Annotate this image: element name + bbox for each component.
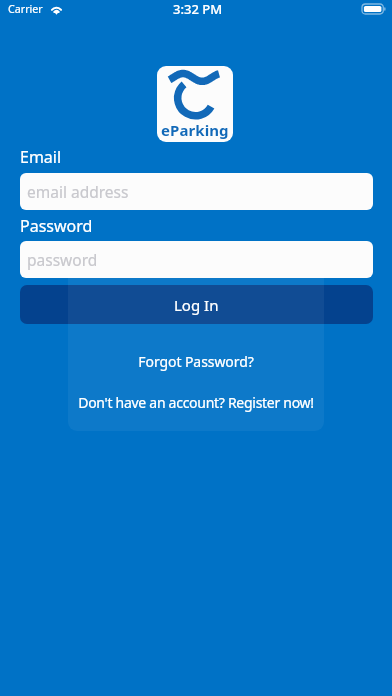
staticText: Log In: [174, 295, 219, 315]
button[interactable]: Log In: [20, 285, 373, 324]
staticText: eParking: [161, 120, 229, 140]
button[interactable]: email address: [20, 173, 373, 210]
staticText: Password: [20, 215, 93, 237]
button[interactable]: Forgot Password?: [0, 348, 392, 374]
staticText: 3:32 PM: [173, 0, 223, 18]
staticText: password: [27, 249, 98, 270]
staticText: Don't have an account? Register now!: [78, 393, 314, 412]
other: Battery full: [362, 4, 386, 14]
other: Wi-Fi signal: [50, 5, 63, 14]
button[interactable]: password: [20, 241, 373, 278]
button[interactable]: Don't have an account? Register now!: [0, 389, 392, 415]
staticText: email address: [27, 181, 129, 202]
staticText: Email: [20, 146, 62, 168]
staticText: Forgot Password?: [138, 352, 254, 371]
staticText: Carrier: [8, 2, 43, 17]
